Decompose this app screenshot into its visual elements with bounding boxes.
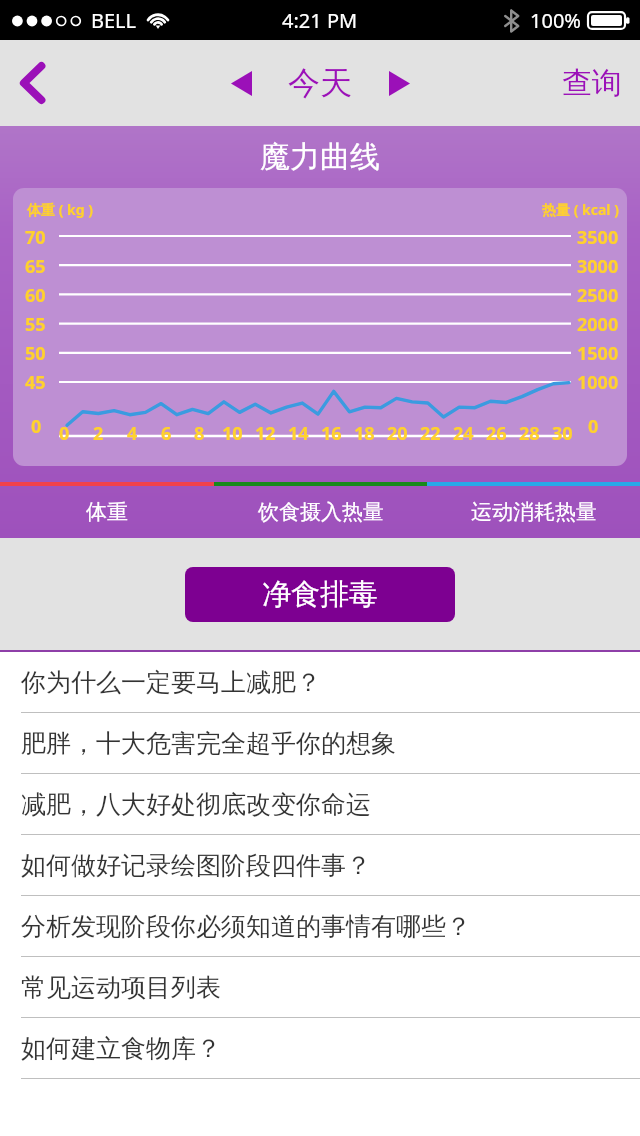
staticText: 10: [222, 421, 243, 446]
staticText: 常见运动项目列表: [21, 972, 221, 1003]
staticText: 8: [194, 421, 205, 446]
staticText: 0: [31, 414, 42, 439]
staticText: 45: [25, 370, 46, 395]
staticText: 查询: [562, 64, 622, 102]
staticText: 今天: [288, 63, 352, 103]
staticText: BELL: [91, 7, 137, 34]
button[interactable]: 你为什么一定要马上减肥？: [0, 652, 640, 713]
staticText: 3000: [577, 254, 619, 279]
staticText: 你为什么一定要马上减肥？: [21, 667, 321, 698]
staticText: 4:21 PM: [282, 7, 358, 34]
button[interactable]: 饮食摄入热量: [214, 486, 427, 538]
button[interactable]: 如何建立食物库？: [0, 1018, 640, 1079]
staticText: 16: [321, 421, 342, 446]
staticText: 50: [25, 341, 46, 366]
staticText: 18: [354, 421, 375, 446]
staticText: 0: [59, 421, 70, 446]
staticText: 运动消耗热量: [471, 499, 597, 525]
button[interactable]: Back: [4, 54, 62, 112]
staticText: 净食排毒: [262, 576, 378, 613]
staticText: 30: [552, 421, 573, 446]
button[interactable]: 运动消耗热量: [427, 486, 640, 538]
button[interactable]: Next day: [372, 56, 426, 110]
staticText: 分析发现阶段你必须知道的事情有哪些？: [21, 911, 471, 942]
staticText: 肥胖，十大危害完全超乎你的想象: [21, 728, 396, 759]
staticText: 22: [420, 421, 441, 446]
button[interactable]: 查询: [556, 56, 628, 110]
button[interactable]: 如何做好记录绘图阶段四件事？: [0, 835, 640, 896]
staticText: 60: [25, 283, 46, 308]
staticText: 55: [25, 312, 46, 337]
staticText: 体重 ( kg ): [27, 200, 93, 219]
button[interactable]: 常见运动项目列表: [0, 957, 640, 1018]
staticText: 减肥，八大好处彻底改变你命运: [21, 789, 371, 820]
staticText: 3500: [577, 225, 619, 250]
staticText: 1500: [577, 341, 619, 366]
button[interactable]: 体重: [0, 486, 214, 538]
staticText: 热量 ( kcal ): [542, 200, 619, 219]
staticText: 20: [387, 421, 408, 446]
button[interactable]: Previous day: [214, 56, 268, 110]
staticText: 12: [255, 421, 276, 446]
staticText: 1000: [577, 370, 619, 395]
button[interactable]: 分析发现阶段你必须知道的事情有哪些？: [0, 896, 640, 957]
staticText: 14: [288, 421, 309, 446]
staticText: 0: [588, 414, 599, 439]
staticText: 70: [25, 225, 46, 250]
staticText: 65: [25, 254, 46, 279]
staticText: 26: [486, 421, 507, 446]
staticText: 2: [93, 421, 104, 446]
staticText: 如何建立食物库？: [21, 1033, 221, 1064]
button[interactable]: 肥胖，十大危害完全超乎你的想象: [0, 713, 640, 774]
staticText: 6: [161, 421, 172, 446]
staticText: 24: [453, 421, 474, 446]
button[interactable]: 减肥，八大好处彻底改变你命运: [0, 774, 640, 835]
staticText: 体重: [86, 499, 128, 525]
staticText: 2000: [577, 312, 619, 337]
staticText: 28: [519, 421, 540, 446]
staticText: 4: [127, 421, 138, 446]
staticText: 魔力曲线: [260, 138, 380, 176]
staticText: 2500: [577, 283, 619, 308]
staticText: 如何做好记录绘图阶段四件事？: [21, 850, 371, 881]
button[interactable]: 今天: [284, 59, 356, 107]
staticText: 100%: [530, 7, 581, 34]
staticText: 饮食摄入热量: [258, 499, 384, 525]
button[interactable]: 净食排毒: [185, 567, 455, 622]
